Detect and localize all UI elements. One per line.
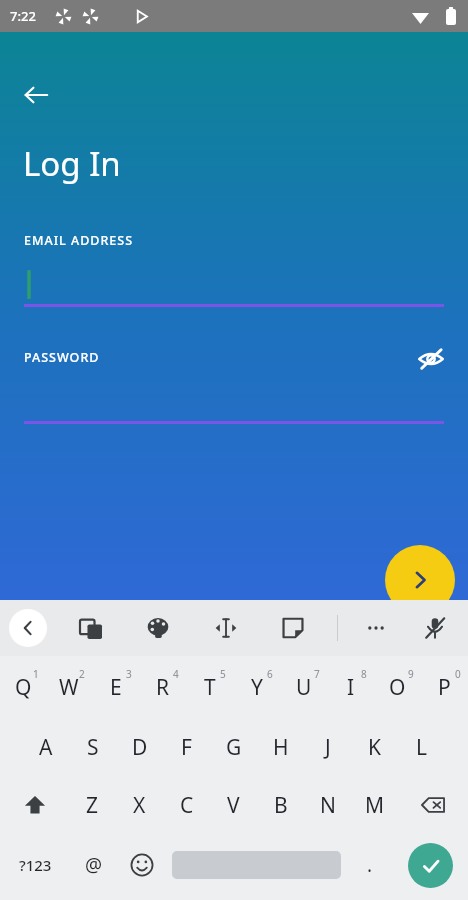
button[interactable]: C xyxy=(163,776,210,834)
button[interactable]: G xyxy=(210,718,257,776)
button[interactable]: X xyxy=(116,776,163,834)
staticText: M xyxy=(365,791,385,820)
staticText: U xyxy=(296,673,312,702)
button[interactable]: E xyxy=(92,656,139,718)
button[interactable] xyxy=(24,380,444,424)
button[interactable]: Shift xyxy=(0,776,69,834)
button[interactable]: J xyxy=(304,718,351,776)
staticText: X xyxy=(133,791,146,820)
staticText: V xyxy=(227,791,240,820)
button[interactable]: Themes xyxy=(139,609,177,647)
button[interactable]: L xyxy=(398,718,445,776)
staticText: L xyxy=(416,733,428,762)
staticText: Log In xyxy=(23,141,121,186)
staticText: EMAIL ADDRESS xyxy=(24,232,134,249)
button[interactable]: Back xyxy=(14,73,58,117)
button[interactable]: Continue xyxy=(385,545,455,615)
staticText: O xyxy=(389,673,406,702)
button[interactable]: Voice input xyxy=(416,609,454,647)
staticText: 5 xyxy=(220,667,226,681)
staticText: S xyxy=(87,733,99,762)
staticText: Q xyxy=(15,673,32,702)
button[interactable]: K xyxy=(351,718,398,776)
button[interactable]: D xyxy=(116,718,163,776)
staticText: R xyxy=(156,673,170,702)
staticText: C xyxy=(180,791,194,820)
button[interactable]: I xyxy=(327,656,374,718)
button[interactable]: Collapse toolbar xyxy=(9,609,47,647)
staticText: 0 xyxy=(455,667,461,681)
staticText: E xyxy=(110,673,122,702)
button[interactable]: S xyxy=(69,718,116,776)
button[interactable]: More options xyxy=(357,609,395,647)
button[interactable]: Backspace xyxy=(398,776,468,834)
staticText: 1 xyxy=(33,667,39,681)
staticText: Y xyxy=(251,673,263,702)
button[interactable]: B xyxy=(257,776,304,834)
button[interactable]: Z xyxy=(69,776,116,834)
button[interactable]: ?123 xyxy=(0,834,70,896)
staticText: 4 xyxy=(173,667,179,681)
button[interactable]: Text editing xyxy=(207,609,245,647)
staticText: . xyxy=(367,852,373,878)
staticText: 7 xyxy=(314,667,320,681)
staticText: T xyxy=(204,673,216,702)
staticText: N xyxy=(320,791,336,820)
button[interactable]: H xyxy=(257,718,304,776)
button[interactable]: . xyxy=(347,834,392,896)
staticText: W xyxy=(59,673,79,702)
button[interactable]: Show password xyxy=(409,337,453,381)
button[interactable]: Enter xyxy=(408,843,453,888)
staticText: 6 xyxy=(267,667,273,681)
button[interactable] xyxy=(24,262,444,307)
staticText: 2 xyxy=(79,667,85,681)
staticText: 7:22 xyxy=(10,7,36,25)
button[interactable]: Stickers xyxy=(274,609,312,647)
button[interactable]: Emoji xyxy=(118,834,166,896)
staticText: 3 xyxy=(126,667,132,681)
staticText: P xyxy=(438,673,451,702)
button[interactable] xyxy=(172,834,341,896)
button[interactable]: W xyxy=(46,656,92,718)
staticText: 9 xyxy=(408,667,414,681)
staticText: Z xyxy=(86,791,99,820)
button[interactable]: U xyxy=(280,656,327,718)
staticText: A xyxy=(39,733,53,762)
button[interactable]: F xyxy=(163,718,210,776)
staticText: G xyxy=(226,733,242,762)
button[interactable]: N xyxy=(304,776,351,834)
staticText: F xyxy=(181,733,192,762)
staticText: H xyxy=(273,733,289,762)
staticText: B xyxy=(274,791,288,820)
staticText: I xyxy=(347,673,355,702)
button[interactable]: P xyxy=(421,656,468,718)
button[interactable]: @ xyxy=(70,834,118,896)
staticText: K xyxy=(368,733,381,762)
button[interactable]: Y xyxy=(233,656,280,718)
staticText: D xyxy=(132,733,148,762)
staticText: 8 xyxy=(361,667,367,681)
staticText: J xyxy=(325,733,331,762)
button[interactable]: Q xyxy=(0,656,46,718)
button[interactable]: T xyxy=(186,656,233,718)
staticText: @ xyxy=(85,852,103,878)
button[interactable]: O xyxy=(374,656,421,718)
button[interactable]: Translate xyxy=(72,609,110,647)
button[interactable]: A xyxy=(22,718,69,776)
staticText: ?123 xyxy=(19,855,52,875)
staticText: PASSWORD xyxy=(24,349,100,366)
button[interactable]: R xyxy=(139,656,186,718)
button[interactable]: M xyxy=(351,776,398,834)
button[interactable]: V xyxy=(210,776,257,834)
